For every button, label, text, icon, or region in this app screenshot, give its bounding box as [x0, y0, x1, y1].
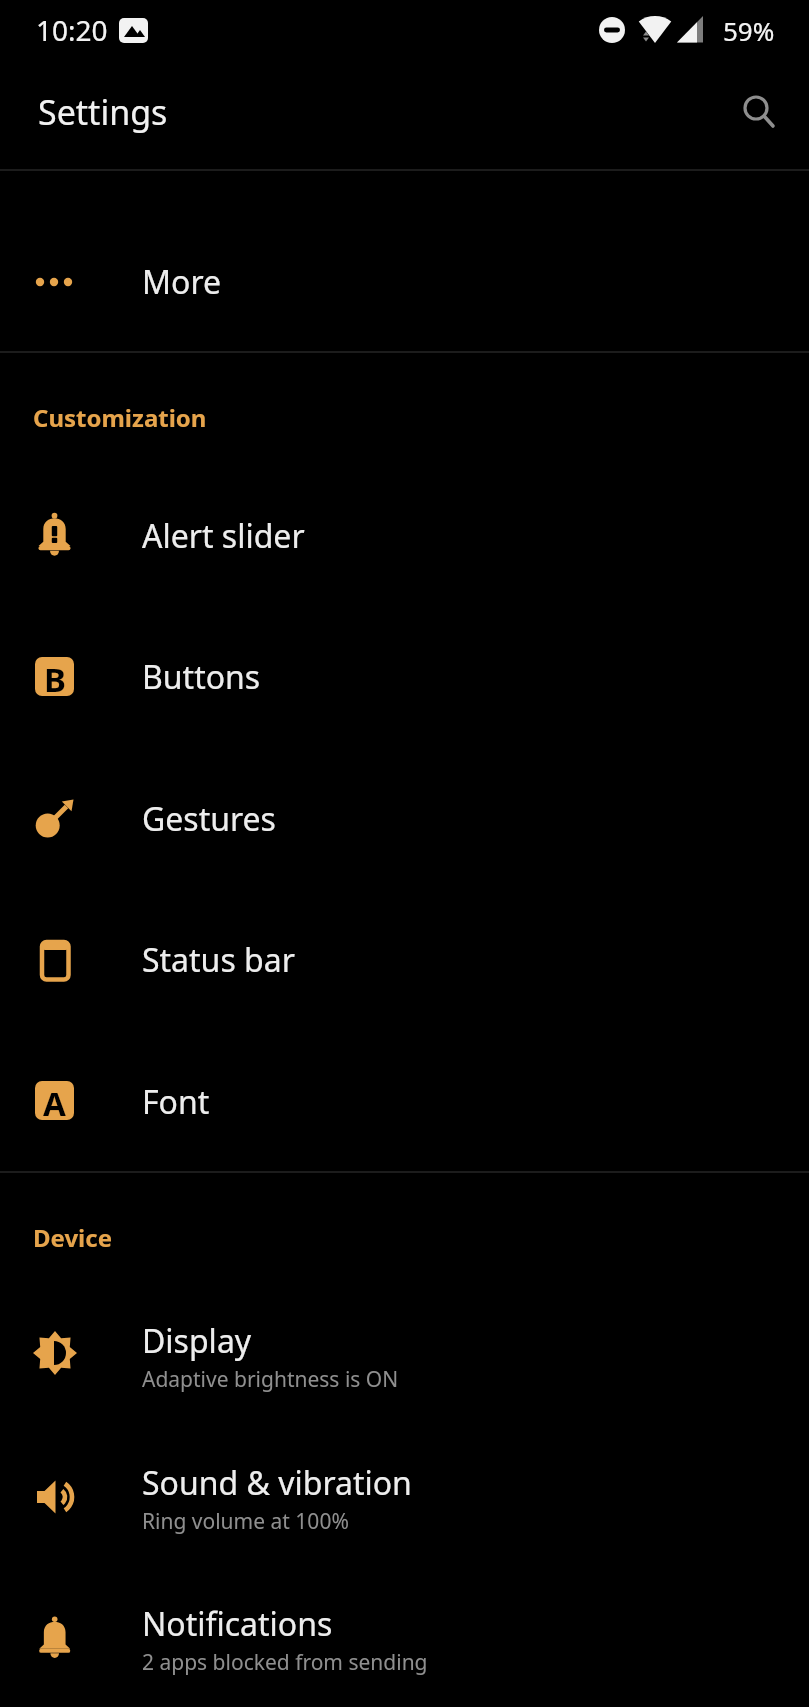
staticText: Adaptive brightness is ON [142, 1365, 399, 1394]
staticText: 10:20 [36, 11, 108, 49]
staticText: Font [142, 1080, 210, 1124]
staticText: B [44, 657, 66, 696]
staticText: Gestures [142, 797, 276, 841]
staticText: More [142, 260, 222, 304]
staticText: Alert slider [142, 514, 305, 558]
staticText: Sound & vibration [142, 1461, 412, 1505]
staticText: Settings [38, 89, 168, 135]
staticText: Notifications [142, 1602, 333, 1646]
staticText: Device [33, 1221, 113, 1254]
staticText: Display [142, 1319, 252, 1363]
staticText: 59% [723, 13, 775, 48]
staticText: Buttons [142, 655, 261, 699]
staticText: Customization [33, 401, 207, 434]
staticText: 2 apps blocked from sending [142, 1648, 428, 1677]
staticText: Status bar [142, 938, 295, 982]
staticText: A [43, 1081, 66, 1120]
staticText: Ring volume at 100% [142, 1507, 349, 1536]
